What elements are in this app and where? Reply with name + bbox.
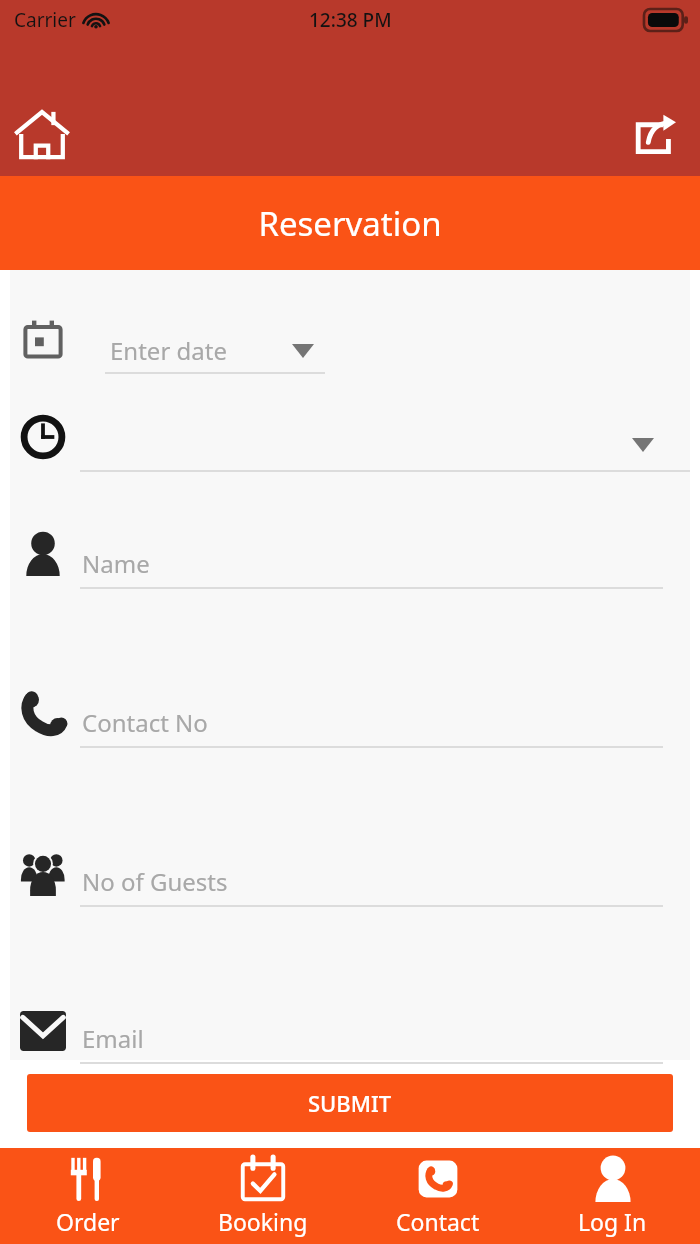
button[interactable]: No of Guests bbox=[10, 833, 690, 919]
staticText: Contact bbox=[396, 1206, 480, 1237]
button[interactable]: Contact No bbox=[10, 674, 690, 760]
staticText: Order bbox=[56, 1206, 120, 1237]
button[interactable]: Email bbox=[10, 992, 690, 1078]
button[interactable]: Log In bbox=[525, 1148, 700, 1244]
button[interactable]: Name bbox=[10, 515, 690, 601]
button[interactable]: SUBMIT bbox=[27, 1074, 673, 1132]
staticText: Booking bbox=[218, 1206, 308, 1237]
button[interactable]: Home bbox=[10, 102, 74, 166]
staticText: Carrier bbox=[14, 7, 76, 33]
staticText: Contact No bbox=[82, 706, 208, 739]
staticText: Enter date bbox=[110, 334, 227, 367]
button[interactable]: Share bbox=[626, 105, 684, 163]
staticText: Email bbox=[82, 1022, 144, 1055]
staticText: No of Guests bbox=[82, 865, 228, 898]
button[interactable]: Contact bbox=[350, 1148, 525, 1244]
button[interactable]: Enter date bbox=[10, 300, 690, 386]
staticText: Reservation bbox=[258, 201, 442, 246]
button[interactable]: Order bbox=[0, 1148, 175, 1244]
staticText: SUBMIT bbox=[308, 1088, 392, 1118]
button[interactable]: Booking bbox=[175, 1148, 350, 1244]
staticText: 12:38 PM bbox=[309, 7, 392, 33]
staticText: Log In bbox=[578, 1206, 647, 1237]
button[interactable] bbox=[10, 398, 690, 484]
staticText: Name bbox=[82, 547, 150, 580]
